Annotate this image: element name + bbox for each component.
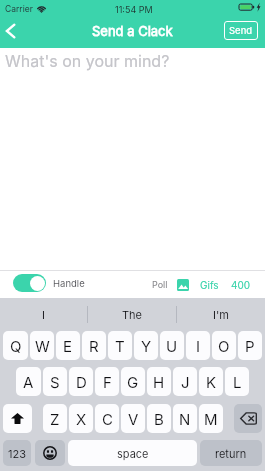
button[interactable]: G [121,367,145,396]
staticText: Send [229,25,253,36]
staticText: return [215,447,247,460]
staticText: L [233,373,242,391]
button[interactable]: Handle toggle [13,274,46,292]
button[interactable]: F [95,367,119,396]
button[interactable]: S [43,367,67,396]
button[interactable]: I [186,331,210,360]
staticText: G [127,373,139,391]
staticText: Carrier [5,4,33,14]
button[interactable]: R [82,331,106,360]
button[interactable]: B [147,404,171,433]
staticText: B [154,410,164,428]
button[interactable]: M [199,404,223,433]
button[interactable]: D [69,367,93,396]
staticText: S [50,373,60,391]
staticText: I [196,337,201,355]
button[interactable]: Q [3,331,28,360]
staticText: F [103,373,112,391]
staticText: P [245,337,255,355]
staticText: The [122,308,143,321]
button[interactable]: I'm [177,298,265,331]
button[interactable]: H [147,367,171,396]
staticText: O [218,337,230,355]
button[interactable]: J [173,367,197,396]
button[interactable]: Backspace [234,404,262,433]
button[interactable]: V [121,404,145,433]
staticText: H [153,373,165,391]
button[interactable]: The [88,298,176,331]
staticText: I'm [213,308,229,321]
staticText: K [206,373,217,391]
button[interactable]: I [0,298,87,331]
button[interactable]: Shift [3,404,32,433]
button[interactable]: Poll [152,279,168,290]
button[interactable]: Add image [177,279,189,291]
staticText: I [42,308,45,321]
button[interactable]: Y [134,331,158,360]
staticText: Z [50,410,60,428]
button[interactable]: K [199,367,223,396]
staticText: 400 [231,279,251,291]
button[interactable]: return [200,440,262,466]
button[interactable]: 123 [3,440,31,466]
staticText: E [63,337,73,355]
button[interactable]: X [69,404,93,433]
button[interactable]: Z [43,404,67,433]
button[interactable]: C [95,404,119,433]
staticText: D [76,373,87,391]
button[interactable]: W [30,331,54,360]
staticText: A [23,373,34,391]
button[interactable]: Back [0,17,22,44]
button[interactable]: A [16,367,41,396]
staticText: Send a Clack [92,23,173,39]
staticText: What's on your mind? [5,51,170,70]
button[interactable]: Emoji [35,440,65,466]
staticText: T [115,337,125,355]
staticText: M [204,410,218,428]
staticText: N [179,410,191,428]
staticText: 123 [8,447,26,460]
staticText: J [181,373,190,391]
staticText: Y [141,337,152,355]
button[interactable]: T [108,331,132,360]
button[interactable]: space [68,440,197,466]
staticText: W [35,337,50,355]
staticText: X [76,410,87,428]
staticText: U [166,337,178,355]
button[interactable]: Send [224,21,258,40]
staticText: Q [10,337,22,355]
button[interactable]: E [56,331,80,360]
staticText: C [102,410,113,428]
staticText: space [117,447,149,460]
button[interactable]: L [225,367,249,396]
staticText: 11:54 PM [115,4,153,15]
button[interactable]: P [238,331,262,360]
button[interactable]: Gifs [200,279,219,291]
button[interactable]: O [212,331,236,360]
staticText: R [89,337,99,355]
staticText: V [128,410,139,428]
button[interactable]: N [173,404,197,433]
staticText: Handle [53,278,85,289]
button[interactable]: U [160,331,184,360]
